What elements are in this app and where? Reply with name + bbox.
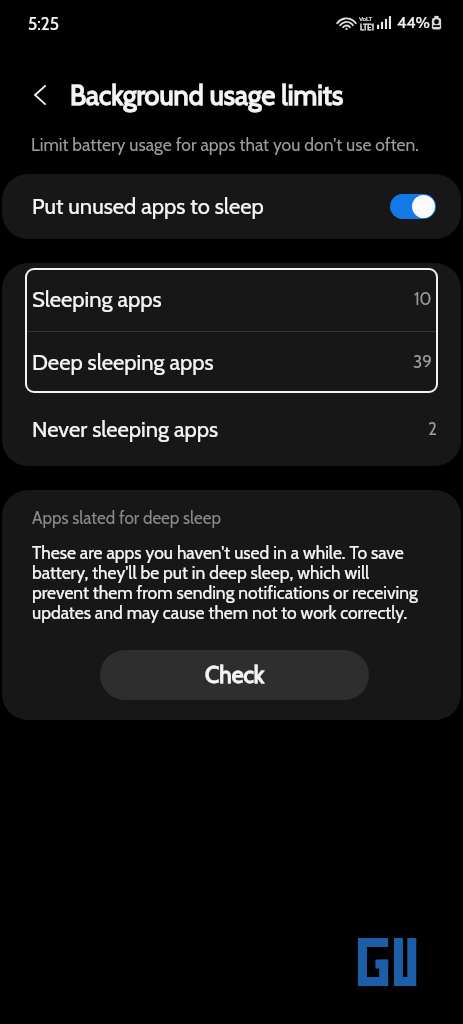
staticText: LTE1 xyxy=(360,23,374,32)
staticText: Deep sleeping apps xyxy=(32,349,413,376)
button[interactable]: Navigate up xyxy=(19,74,61,116)
staticText: VoLTE xyxy=(359,15,375,23)
staticText: 39 xyxy=(413,352,432,373)
staticText: 10 xyxy=(414,289,432,310)
staticText: These are apps you haven't used in a whi… xyxy=(32,542,420,623)
staticText: Check xyxy=(205,661,265,689)
button[interactable]: Sleeping apps xyxy=(25,268,438,331)
staticText: 5:25 xyxy=(28,14,59,35)
staticText: Never sleeping apps xyxy=(32,416,428,443)
staticText: 44% xyxy=(397,13,430,32)
button[interactable]: Deep sleeping apps xyxy=(25,332,438,393)
button[interactable]: Check xyxy=(100,650,369,700)
staticText: Sleeping apps xyxy=(32,286,414,313)
staticText: Apps slated for deep sleep xyxy=(32,508,221,529)
staticText: Background usage limits xyxy=(70,79,344,112)
button[interactable]: Never sleeping apps xyxy=(2,393,461,466)
button[interactable]: Put unused apps to sleep xyxy=(2,174,461,239)
staticText: Limit battery usage for apps that you do… xyxy=(31,134,419,155)
staticText: 2 xyxy=(428,419,437,440)
staticText: Put unused apps to sleep xyxy=(32,193,390,220)
